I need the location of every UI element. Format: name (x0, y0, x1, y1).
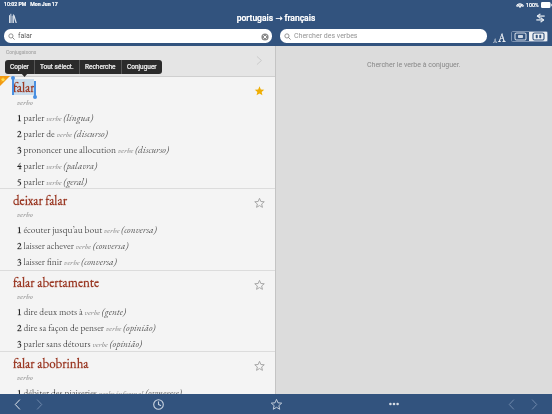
staticText: 100% (526, 2, 539, 8)
button[interactable]: Swap languages (532, 10, 548, 26)
staticText: deixar falar (13, 192, 68, 209)
staticText: 3 prononcer une allocution verbe (discur… (17, 143, 169, 155)
staticText: 3 parler sans détours verbe (opinião) (17, 337, 143, 349)
staticText: verbo (17, 209, 33, 219)
button[interactable]: Add to favourites (252, 196, 266, 210)
button[interactable]: Favourite (252, 84, 266, 98)
button[interactable]: More (386, 396, 402, 412)
button[interactable]: Dictionaries (5, 10, 21, 26)
button[interactable]: Text size (491, 31, 507, 45)
staticText: falar abobrinha (13, 355, 89, 372)
button[interactable]: Conjuguer (122, 60, 162, 74)
button[interactable]: Back (9, 396, 25, 412)
button[interactable]: Split pane (529, 32, 547, 41)
staticText: falar (13, 80, 35, 97)
button[interactable]: falar abertamente (0, 271, 275, 351)
button[interactable]: Copier (5, 60, 34, 74)
staticText: Recherche (85, 63, 116, 71)
staticText: Conjugaisons (6, 49, 37, 55)
button[interactable]: Previous page (503, 396, 519, 412)
staticText: falar abertamente (13, 274, 100, 291)
staticText: portugais → français (0, 13, 552, 23)
staticText: falar (13, 79, 35, 96)
staticText: 2 parler de verbe (discurso) (17, 127, 108, 139)
button[interactable]: Tout sélect. (35, 60, 79, 74)
staticText: 2 laisser achever verbe (conversa) (17, 239, 129, 251)
staticText: 1 parler verbe (língua) (17, 111, 94, 123)
staticText: 3 laisser finir verbe (conversa) (17, 255, 117, 267)
staticText: 2 dire sa façon de penser verbe (opinião… (17, 321, 156, 333)
button[interactable]: Chercher des verbes (280, 29, 487, 43)
button[interactable]: falar abobrinha (0, 352, 275, 412)
staticText: 1 débiter des niaiseries verbe informal … (17, 386, 182, 398)
button[interactable]: History (150, 396, 166, 412)
staticText: Chercher des verbes (294, 32, 358, 40)
button[interactable]: Clear (259, 31, 270, 42)
staticText: verbo (17, 372, 33, 382)
button[interactable]: Add to favourites (252, 359, 266, 373)
staticText: verbo (17, 97, 33, 107)
staticText: Tout sélect. (40, 63, 74, 71)
button[interactable]: Single pane (512, 32, 529, 41)
staticText: Conjuguer (127, 63, 157, 71)
button[interactable]: falar (4, 29, 272, 43)
button[interactable]: falar (0, 77, 275, 188)
staticText: Chercher le verbe à conjuguer. (367, 61, 461, 69)
button[interactable]: Conjugaisons (0, 46, 275, 76)
staticText: 1 dire deux mots à verbe (gente) (17, 305, 126, 317)
button[interactable]: Forward (31, 396, 47, 412)
staticText: 1 écouter jusqu’au bout verbe (conversa) (17, 223, 157, 235)
button[interactable]: deixar falar (0, 189, 275, 270)
staticText: Copier (10, 63, 29, 71)
button[interactable]: Favourites (268, 396, 284, 412)
staticText: A (493, 37, 498, 45)
staticText: falar (18, 32, 33, 40)
staticText: verbo (17, 291, 33, 301)
button[interactable]: Next page (526, 396, 542, 412)
button[interactable]: Add to favourites (252, 278, 266, 292)
button[interactable]: Recherche (80, 60, 121, 74)
staticText: 4 parler verbe (palavra) (17, 159, 98, 171)
staticText: A (498, 31, 506, 45)
staticText: 10:02 PM Mon Jun 17 (4, 1, 58, 7)
staticText: 5 parler verbe (geral) (17, 175, 87, 187)
